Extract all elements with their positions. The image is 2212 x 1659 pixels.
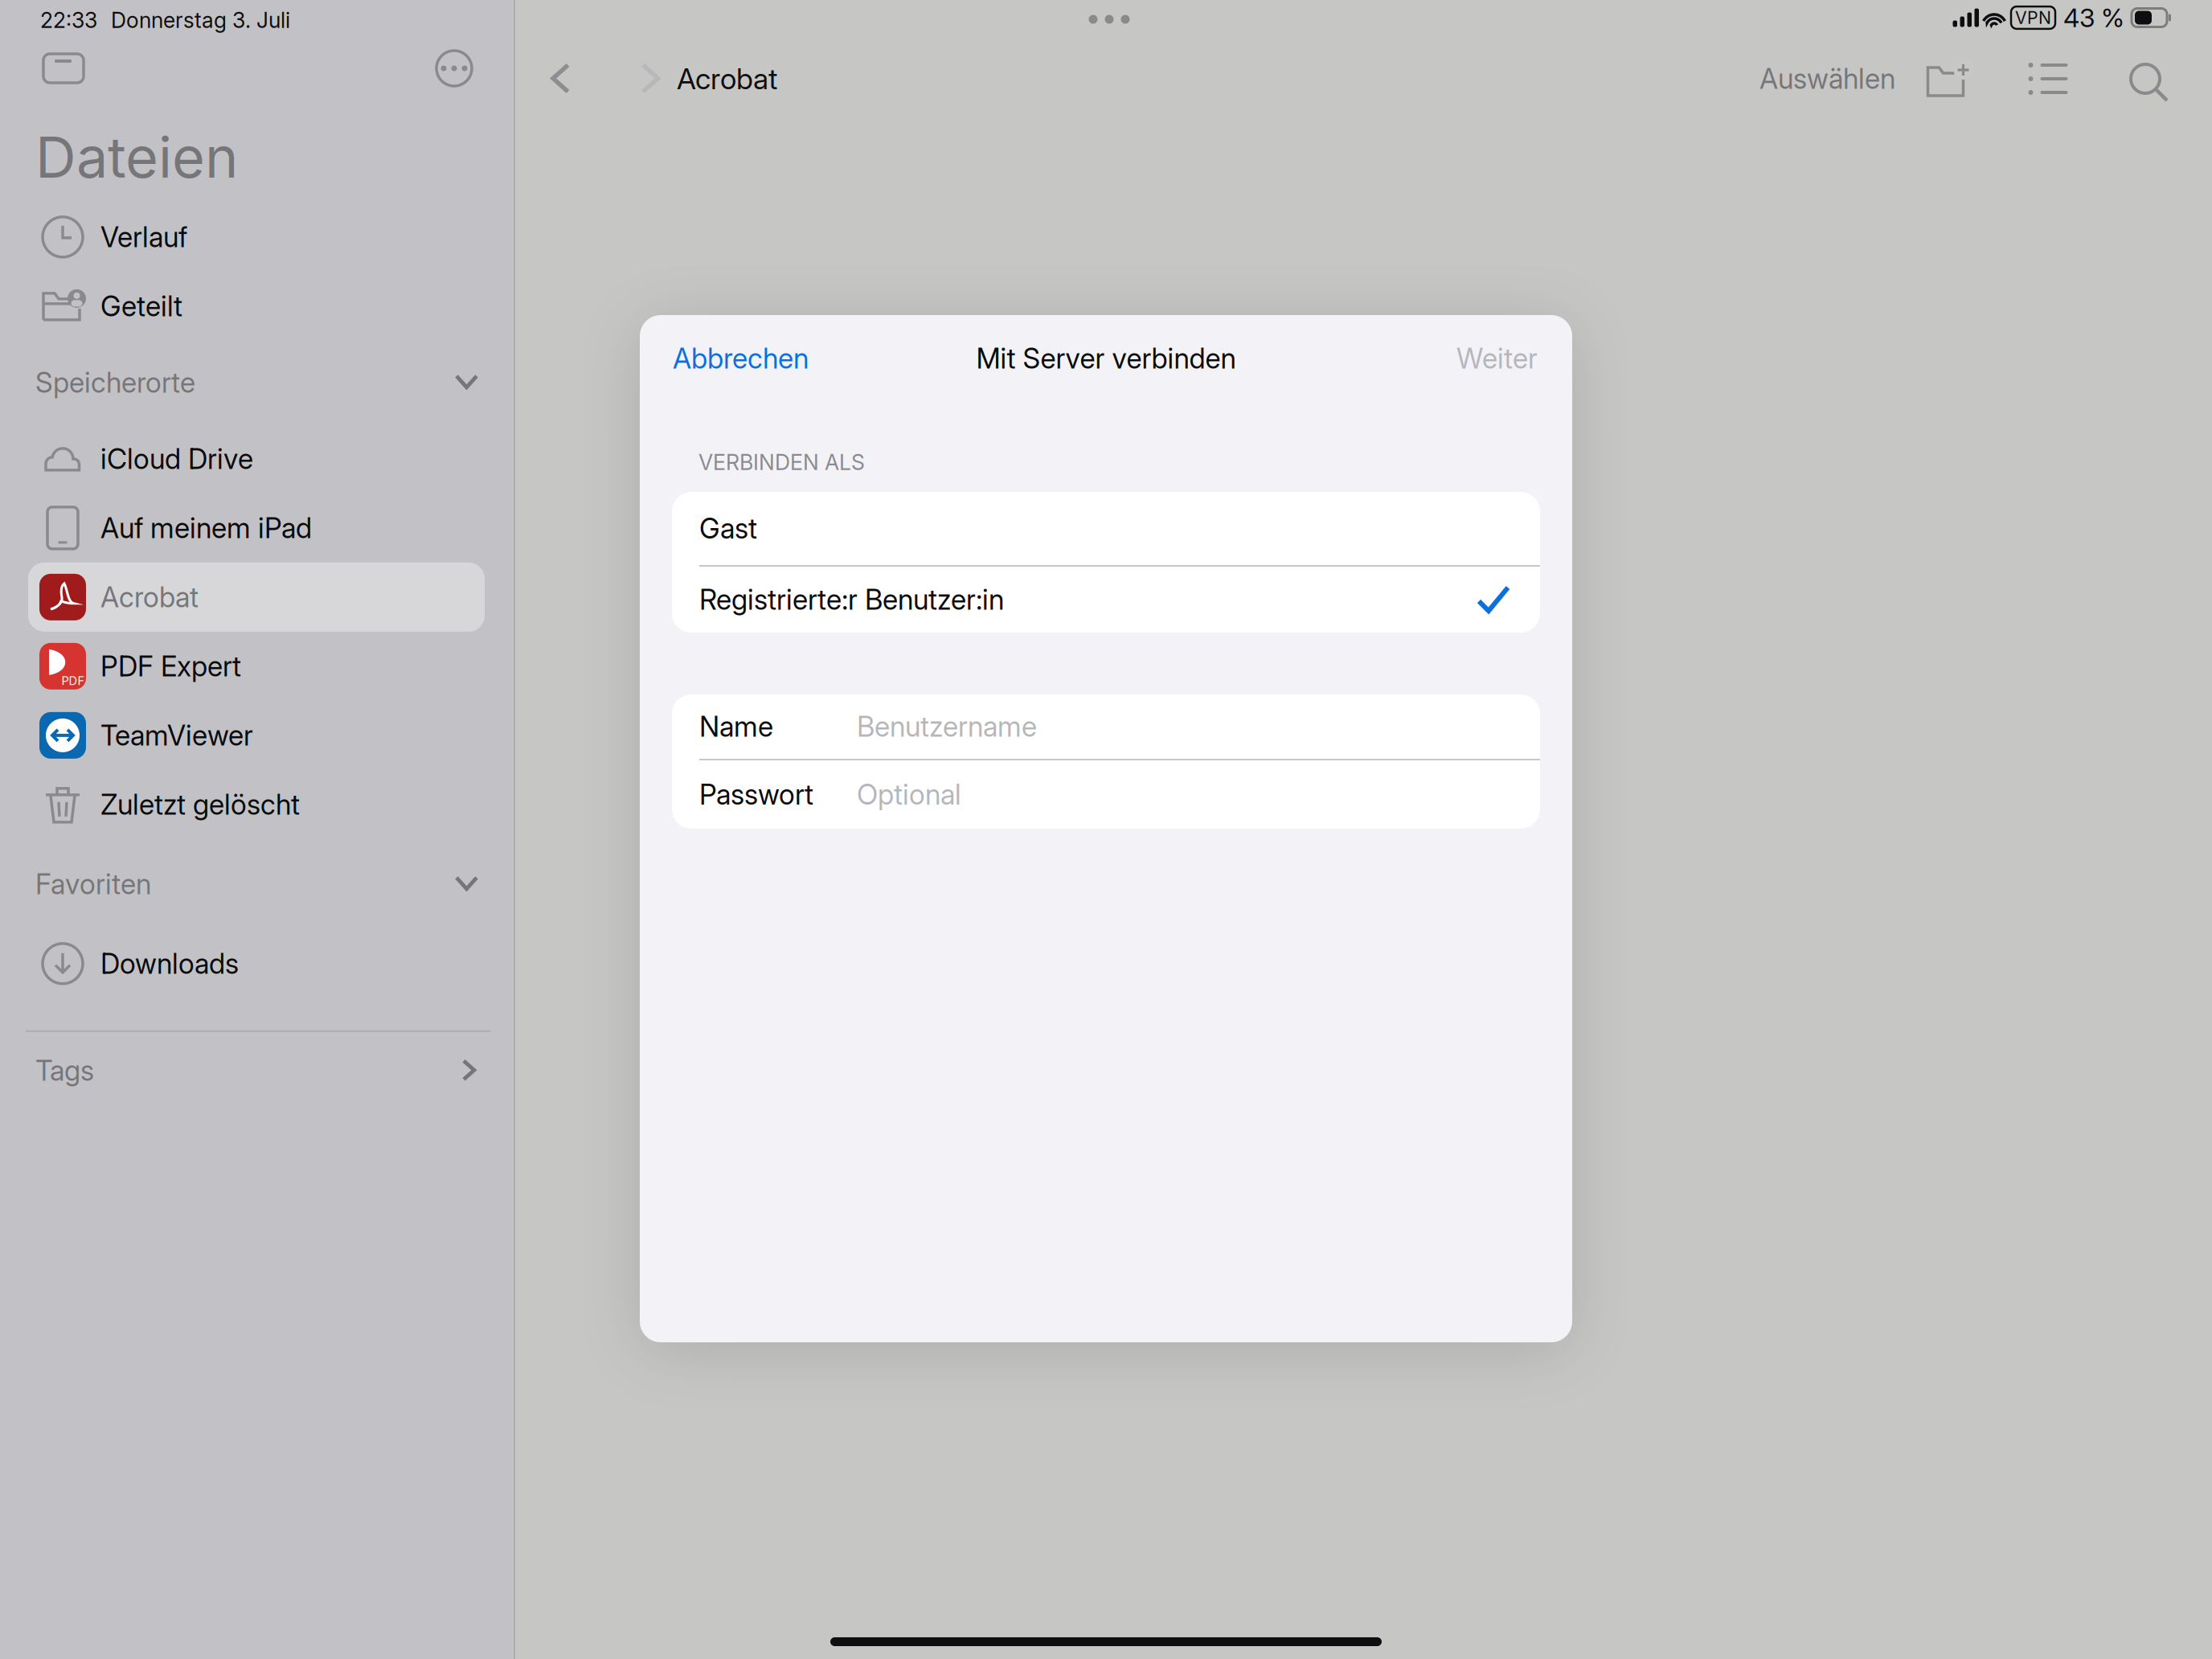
button[interactable]: Seitenleiste ausblenden	[34, 42, 93, 95]
staticText: Acrobat	[677, 61, 777, 96]
button[interactable]: Neuer Ordner	[1921, 49, 1976, 109]
button[interactable]: Favoriten	[0, 839, 514, 929]
button[interactable]: iCloud Drive	[0, 424, 514, 493]
button[interactable]: Multitasking-Steuerung	[1075, 0, 1143, 40]
button[interactable]: Vorwärts	[625, 47, 677, 110]
staticText: Downloads	[100, 947, 239, 980]
button[interactable]: Geteilt	[0, 272, 514, 341]
button[interactable]: Zurück	[535, 47, 587, 110]
staticText: Gast	[699, 512, 757, 545]
button[interactable]: Weiter	[1456, 330, 1538, 387]
staticText: 22:33	[40, 7, 97, 33]
staticText: VERBINDEN ALS	[698, 449, 865, 475]
button[interactable]: Name	[672, 694, 1540, 759]
staticText: PDF Expert	[100, 649, 241, 683]
button[interactable]: Gast	[672, 492, 1540, 565]
staticText: Geteilt	[100, 289, 182, 323]
staticText: Auswählen	[1759, 62, 1895, 96]
staticText: Acrobat	[100, 580, 199, 614]
staticText: Abbrechen	[673, 342, 809, 375]
staticText: Speicherorte	[35, 366, 195, 399]
staticText: Donnerstag 3. Juli	[111, 7, 290, 33]
staticText: Benutzername	[857, 710, 1037, 743]
button[interactable]: Auswählen	[1759, 49, 1895, 108]
button[interactable]: Abbrechen	[673, 330, 809, 387]
staticText: TeamViewer	[100, 718, 253, 752]
button[interactable]: Darstellung ändern	[2023, 50, 2073, 108]
staticText: Tags	[35, 1054, 94, 1087]
staticText: Registrierte:r Benutzer:in	[699, 583, 1004, 616]
staticText: Mit Server verbinden	[976, 342, 1236, 375]
button[interactable]: Tags	[0, 1032, 514, 1109]
button[interactable]: Downloads	[0, 929, 514, 998]
button[interactable]: Verlauf	[0, 202, 514, 272]
button[interactable]: PDF	[0, 632, 514, 701]
staticText: Name	[699, 710, 773, 743]
staticText: Auf meinem iPad	[100, 511, 312, 545]
button[interactable]: Zuletzt gelöscht	[0, 770, 514, 839]
button[interactable]: Registrierte:r Benutzer:in	[672, 567, 1540, 633]
staticText: Dateien	[35, 123, 238, 191]
staticText: Passwort	[699, 778, 813, 811]
staticText: Weiter	[1456, 342, 1538, 375]
staticText: Verlauf	[100, 220, 187, 254]
staticText: PDF	[61, 674, 85, 688]
button[interactable]: Suchen	[2123, 50, 2168, 108]
button[interactable]: Passwort	[672, 760, 1540, 829]
staticText: 43 %	[2063, 2, 2124, 33]
button[interactable]: Acrobat	[0, 563, 514, 632]
staticText: Zuletzt gelöscht	[100, 788, 300, 821]
button[interactable]: Auf meinem iPad	[0, 493, 514, 563]
staticText: iCloud Drive	[100, 442, 253, 476]
staticText: Optional	[857, 778, 961, 811]
button[interactable]: TeamViewer	[0, 701, 514, 770]
button[interactable]: Speicherorte	[0, 341, 514, 424]
staticText: Favoriten	[35, 867, 151, 901]
staticText: VPN	[2015, 7, 2051, 28]
button[interactable]: Weitere Optionen	[427, 41, 481, 96]
